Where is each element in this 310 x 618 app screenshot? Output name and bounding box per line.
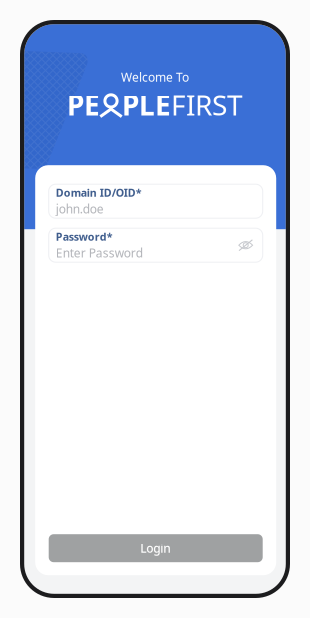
button[interactable]: Login <box>49 534 263 562</box>
button[interactable]: Password* <box>49 228 263 262</box>
staticText: Welcome To <box>121 69 189 85</box>
staticText: PE <box>67 86 100 123</box>
staticText: Domain ID/OID* <box>56 186 142 200</box>
staticText: john.doe <box>56 201 104 217</box>
staticText: FIRST <box>171 86 243 123</box>
staticText: Password* <box>56 230 113 244</box>
staticText: PLE <box>122 86 171 123</box>
staticText: Login <box>140 540 171 556</box>
staticText: Enter Password <box>56 245 143 261</box>
button[interactable]: Domain ID/OID* <box>49 184 263 218</box>
